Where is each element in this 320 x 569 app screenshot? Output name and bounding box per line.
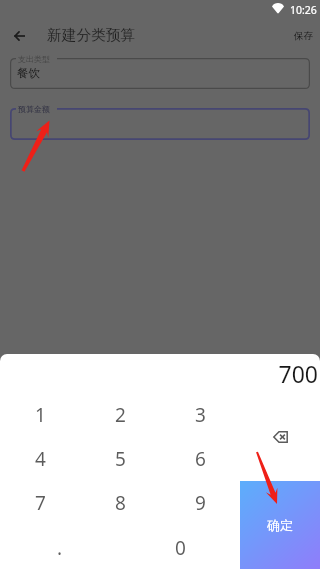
staticText: 10:26 (290, 3, 317, 17)
staticText: 5 (115, 446, 126, 472)
button[interactable]: Backspace (240, 415, 320, 459)
staticText: 9 (195, 490, 206, 516)
button[interactable]: 5 (80, 439, 160, 479)
button[interactable]: 7 (0, 483, 80, 523)
button[interactable]: 0 (120, 528, 240, 568)
button[interactable]: Back (8, 24, 31, 47)
staticText: 新建分类预算 (47, 26, 136, 45)
button[interactable]: 9 (160, 483, 240, 523)
staticText: 预算金额 (18, 104, 50, 114)
button[interactable]: 1 (0, 395, 80, 435)
button[interactable]: 4 (0, 439, 80, 479)
staticText: 确定 (267, 517, 293, 533)
staticText: 700 (0, 358, 318, 389)
staticText: 8 (115, 490, 126, 516)
staticText: 4 (35, 446, 46, 472)
staticText: 支出类型 (18, 54, 50, 64)
staticText: 餐饮 (17, 66, 40, 80)
button[interactable]: 6 (160, 439, 240, 479)
staticText: 6 (195, 446, 206, 472)
staticText: 3 (195, 402, 206, 428)
button[interactable]: 保存 (294, 30, 313, 42)
staticText: 7 (35, 490, 46, 516)
staticText: 0 (175, 535, 186, 561)
button[interactable]: 确定 (240, 481, 320, 569)
staticText: 保存 (294, 30, 313, 42)
staticText: 1 (35, 402, 46, 428)
button[interactable]: 8 (80, 483, 160, 523)
button[interactable]: 2 (80, 395, 160, 435)
staticText: 2 (115, 402, 126, 428)
button[interactable]: . (0, 528, 120, 568)
button[interactable]: 3 (160, 395, 240, 435)
staticText: . (57, 535, 63, 561)
